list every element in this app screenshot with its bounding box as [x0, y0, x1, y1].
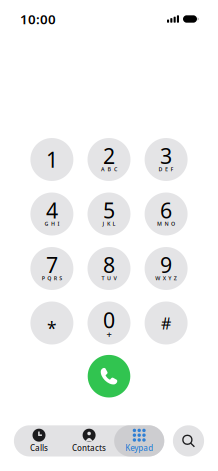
staticText: Keypad: [125, 442, 153, 453]
staticText: M: [157, 220, 162, 227]
button[interactable]: *: [30, 301, 73, 344]
staticText: W: [155, 275, 160, 282]
staticText: 0: [103, 306, 115, 334]
staticText: Q: [47, 275, 51, 282]
staticText: N: [165, 220, 169, 227]
staticText: J: [102, 220, 104, 227]
button[interactable]: 0: [87, 301, 130, 344]
staticText: G: [44, 220, 48, 227]
staticText: I: [57, 220, 59, 227]
staticText: 7: [46, 251, 58, 279]
staticText: F: [171, 166, 174, 173]
button[interactable]: Contacts: [64, 425, 114, 456]
staticText: D: [159, 166, 163, 173]
button[interactable]: 2: [87, 138, 130, 181]
staticText: Contacts: [72, 442, 106, 453]
staticText: V: [113, 275, 116, 282]
button[interactable]: 4: [30, 192, 73, 235]
staticText: R: [54, 275, 57, 282]
staticText: X: [163, 275, 166, 282]
staticText: E: [165, 166, 168, 173]
button[interactable]: 3: [145, 138, 188, 181]
staticText: A: [101, 166, 105, 173]
staticText: S: [59, 275, 62, 282]
button[interactable]: 8: [87, 247, 130, 290]
button[interactable]: Call: [88, 355, 130, 397]
staticText: *: [47, 317, 57, 340]
staticText: 3: [160, 142, 172, 170]
staticText: P: [42, 275, 45, 282]
staticText: K: [107, 220, 110, 227]
staticText: 2: [103, 142, 115, 170]
button[interactable]: #: [145, 301, 188, 344]
button[interactable]: 6: [145, 192, 188, 235]
staticText: L: [112, 220, 115, 227]
staticText: Y: [168, 275, 171, 282]
staticText: #: [161, 313, 171, 334]
staticText: U: [107, 275, 111, 282]
staticText: O: [171, 220, 175, 227]
staticText: T: [101, 275, 104, 282]
button[interactable]: 9: [145, 247, 188, 290]
staticText: Calls: [30, 442, 48, 453]
button[interactable]: 5: [87, 192, 130, 235]
button[interactable]: Calls: [14, 425, 64, 456]
staticText: 9: [160, 251, 172, 279]
staticText: Z: [174, 275, 177, 282]
staticText: 6: [160, 196, 172, 224]
staticText: 1: [46, 145, 58, 174]
staticText: C: [114, 166, 117, 173]
staticText: 5: [103, 196, 115, 224]
button[interactable]: 7: [30, 247, 73, 290]
staticText: 4: [46, 196, 58, 224]
staticText: +: [106, 328, 111, 340]
button[interactable]: Search: [173, 425, 204, 456]
button[interactable]: 1: [30, 138, 73, 181]
staticText: B: [107, 166, 111, 173]
staticText: H: [51, 220, 55, 227]
staticText: 10:00: [20, 10, 56, 28]
staticText: 8: [103, 251, 115, 279]
button[interactable]: Keypad: [114, 425, 164, 456]
